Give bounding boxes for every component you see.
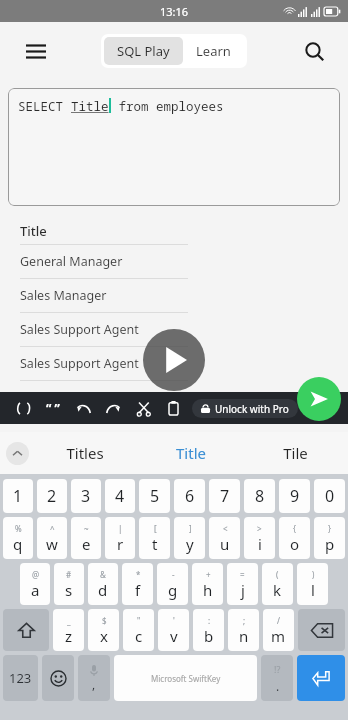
button[interactable]: _ (53, 609, 84, 651)
button[interactable]: !? (261, 655, 293, 701)
button[interactable]: Microsoft SwiftKey (114, 655, 257, 701)
button[interactable]: & (88, 563, 118, 605)
button[interactable]: Unlock with Pro (192, 399, 298, 418)
staticText: # (66, 569, 72, 580)
staticText: 5 (150, 485, 160, 507)
staticText: > (257, 523, 262, 534)
button[interactable]: { (279, 517, 310, 559)
button[interactable]: 6 (174, 479, 205, 513)
button[interactable]: : (193, 609, 224, 651)
button[interactable]: = (227, 563, 258, 605)
button[interactable]: Run (297, 377, 341, 421)
staticText: from employees (111, 98, 224, 115)
staticText: Tile (283, 443, 308, 463)
staticText: ~ (84, 523, 89, 534)
button[interactable]: Paste (158, 392, 188, 424)
button[interactable]: Sales Manager (20, 279, 188, 312)
button[interactable]: ' (158, 609, 189, 651)
button[interactable]: 4 (105, 479, 135, 513)
button[interactable]: ~ (71, 517, 101, 559)
button[interactable]: 3 (71, 479, 101, 513)
button[interactable]: 2 (37, 479, 67, 513)
button[interactable]: Search (296, 33, 332, 69)
button[interactable]: ] (174, 517, 205, 559)
button[interactable]: % (3, 517, 33, 559)
button[interactable]: SQL Play (104, 37, 183, 65)
staticText: m (271, 626, 286, 646)
staticText: * (136, 569, 141, 580)
button[interactable]: } (314, 517, 345, 559)
button[interactable]: 0 (314, 479, 345, 513)
button[interactable]: @ (20, 563, 50, 605)
staticText: , (92, 676, 96, 692)
staticText: } (328, 523, 332, 534)
button[interactable]: Voice input (78, 655, 110, 701)
button[interactable]: # (54, 563, 84, 605)
staticText: 6 (185, 485, 195, 507)
staticText: Sales Support Agent (20, 355, 139, 372)
staticText: 0 (325, 485, 335, 507)
staticText: z (65, 626, 73, 646)
button[interactable]: Expand (6, 442, 29, 465)
button[interactable]: 8 (244, 479, 275, 513)
staticText: ] (189, 523, 192, 534)
staticText: Sales Manager (20, 287, 107, 304)
button[interactable]: 123 (3, 655, 38, 701)
button[interactable]: Undo (68, 392, 98, 424)
button[interactable]: * (122, 563, 153, 605)
button[interactable]: 1 (3, 479, 33, 513)
staticText: ' (173, 615, 175, 626)
button[interactable]: Sales Support Agent (20, 313, 188, 346)
button[interactable]: + (192, 563, 223, 605)
staticText: u (220, 534, 230, 554)
button[interactable]: ) (297, 563, 328, 605)
staticText: p (325, 534, 335, 554)
staticText: Microsoft SwiftKey (151, 673, 221, 684)
button[interactable]: Run query (143, 329, 205, 391)
button[interactable]: 5 (139, 479, 170, 513)
staticText: | (118, 523, 123, 534)
staticText: SELECT (18, 98, 71, 115)
button[interactable]: $ (88, 609, 119, 651)
button[interactable]: > (244, 517, 275, 559)
staticText: f (135, 580, 141, 600)
button[interactable]: " (123, 609, 154, 651)
button[interactable]: Enter (297, 655, 345, 701)
staticText: & (100, 569, 106, 580)
button[interactable]: Menu (18, 33, 54, 69)
button[interactable]: ^ (37, 517, 67, 559)
button[interactable]: SELECT (8, 88, 340, 206)
staticText: Learn (196, 42, 231, 60)
button[interactable]: Shift (3, 609, 49, 651)
button[interactable]: 7 (209, 479, 240, 513)
button[interactable]: ( (262, 563, 293, 605)
staticText: k (273, 580, 282, 600)
button[interactable]: - (157, 563, 188, 605)
staticText: w (46, 534, 58, 554)
button[interactable]: 9 (279, 479, 310, 513)
staticText: 13:16 (160, 4, 189, 19)
button[interactable]: Learn (183, 37, 244, 65)
staticText: Sales Support Agent (20, 321, 139, 338)
button[interactable]: Backspace (298, 609, 345, 651)
staticText: v (170, 626, 178, 646)
button[interactable]: Cut (128, 392, 158, 424)
button[interactable]: [ (139, 517, 170, 559)
button[interactable]: Redo (98, 392, 128, 424)
button[interactable]: Titles (32, 432, 138, 474)
button[interactable]: < (209, 517, 240, 559)
button[interactable]: | (105, 517, 135, 559)
button[interactable]: Title (138, 432, 243, 474)
staticText: Title (71, 98, 109, 115)
button[interactable]: Emoji (42, 655, 74, 701)
staticText: Title (20, 222, 47, 240)
staticText: _ (67, 615, 71, 626)
button[interactable]: General Manager (20, 245, 188, 278)
button[interactable]: Tile (243, 432, 348, 474)
button[interactable]: / (263, 609, 294, 651)
button[interactable]: Parentheses (8, 392, 38, 424)
button[interactable]: Quotes (38, 392, 68, 424)
button[interactable]: ; (228, 609, 259, 651)
button[interactable]: Sales Support Agent (20, 347, 188, 380)
staticText: 1 (13, 485, 23, 507)
